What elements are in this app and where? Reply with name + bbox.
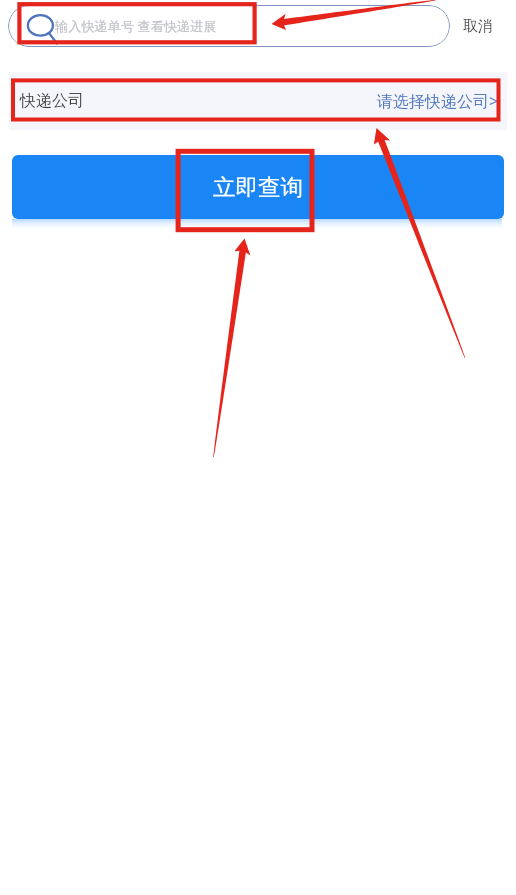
staticText: 立即查询 xyxy=(213,173,303,201)
staticText: 快递公司 xyxy=(20,91,84,111)
button[interactable]: 取消 xyxy=(458,12,498,41)
button[interactable]: 快递公司 xyxy=(9,72,507,130)
staticText: 输入快递单号 查看快递进展 xyxy=(55,17,217,35)
button[interactable]: 立即查询 xyxy=(12,155,504,219)
staticText: 取消 xyxy=(463,17,493,36)
staticText: 请选择快递公司> xyxy=(377,90,499,112)
button[interactable]: Search xyxy=(8,5,450,47)
other: Search xyxy=(27,13,55,39)
